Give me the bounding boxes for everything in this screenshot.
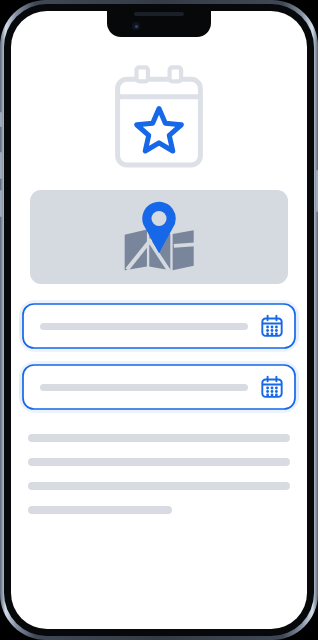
- button[interactable]: Pick date: [23, 304, 295, 348]
- button[interactable]: Pick date: [259, 374, 285, 400]
- button[interactable]: Pick date: [23, 365, 295, 409]
- button[interactable]: [30, 190, 288, 284]
- button[interactable]: Pick date: [259, 313, 285, 339]
